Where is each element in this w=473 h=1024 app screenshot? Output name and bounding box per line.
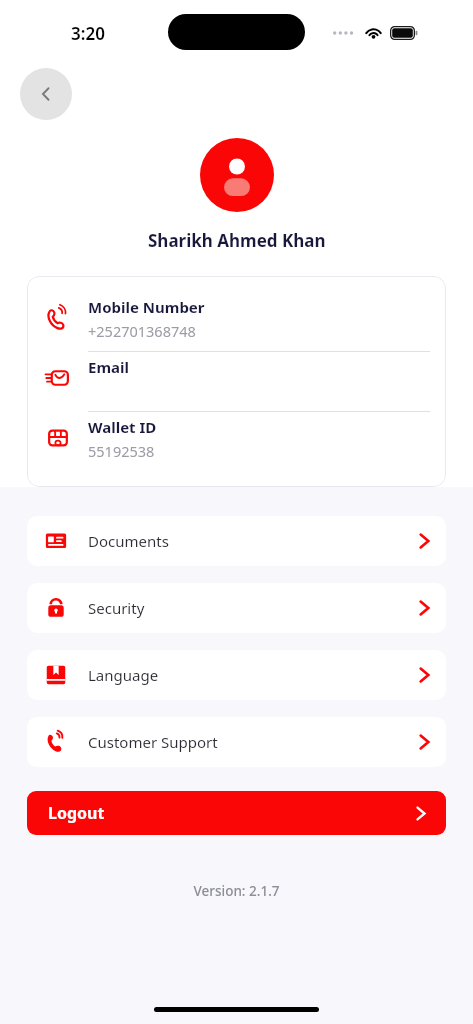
staticText: Version: 2.1.7 (193, 882, 280, 900)
button[interactable]: Mobile Number (27, 292, 446, 351)
staticText: 55192538 (88, 441, 155, 461)
button[interactable]: Language (27, 650, 446, 700)
staticText: Language (88, 665, 419, 685)
button[interactable]: Logout (27, 791, 446, 835)
staticText: Logout (48, 802, 416, 824)
button[interactable]: Email (27, 352, 446, 411)
staticText: Security (88, 598, 419, 618)
staticText: Customer Support (88, 732, 419, 752)
staticText: 3:20 (71, 22, 105, 45)
staticText: +252701368748 (88, 321, 196, 341)
staticText: Wallet ID (88, 417, 157, 437)
staticText: Mobile Number (88, 297, 205, 317)
button[interactable]: Customer Support (27, 717, 446, 767)
button[interactable]: Back (20, 68, 72, 120)
staticText: Documents (88, 531, 419, 551)
staticText: Sharikh Ahmed Khan (148, 229, 326, 252)
staticText: Email (88, 357, 129, 377)
button[interactable]: Documents (27, 516, 446, 566)
button[interactable]: Security (27, 583, 446, 633)
button[interactable]: Wallet ID (27, 412, 446, 471)
